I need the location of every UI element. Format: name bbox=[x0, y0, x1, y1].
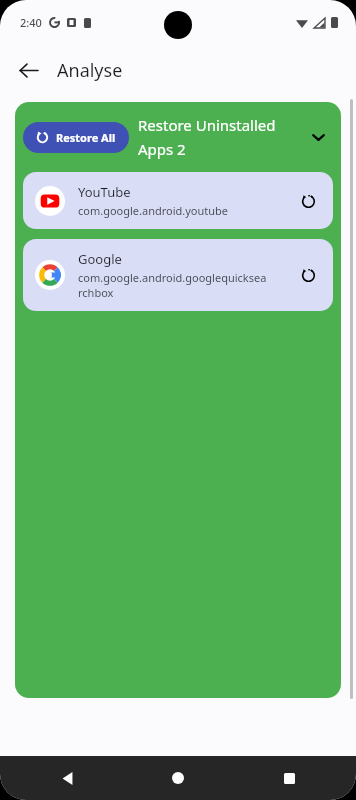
button[interactable]: Back bbox=[8, 50, 48, 90]
button[interactable]: Restore All bbox=[23, 122, 129, 153]
staticText: Restore All bbox=[56, 130, 116, 145]
staticText: Google bbox=[78, 250, 122, 268]
button[interactable]: Google bbox=[23, 239, 333, 311]
button[interactable]: YouTube bbox=[23, 172, 333, 229]
staticText: 2:40 bbox=[20, 15, 42, 30]
button[interactable]: Expand bbox=[303, 122, 333, 152]
staticText: Analyse bbox=[57, 58, 123, 83]
staticText: YouTube bbox=[78, 183, 131, 201]
staticText: Restore Uninstalled Apps 2 bbox=[138, 115, 303, 159]
button[interactable]: Back bbox=[50, 761, 84, 795]
button[interactable]: Restore YouTube bbox=[295, 188, 321, 214]
staticText: com.google.android.googlequicksea rchbox bbox=[78, 270, 267, 300]
button[interactable]: Restore Google bbox=[295, 262, 321, 288]
staticText: com.google.android.youtube bbox=[78, 203, 229, 218]
button[interactable]: Home bbox=[161, 761, 195, 795]
button[interactable]: Recents bbox=[272, 761, 306, 795]
